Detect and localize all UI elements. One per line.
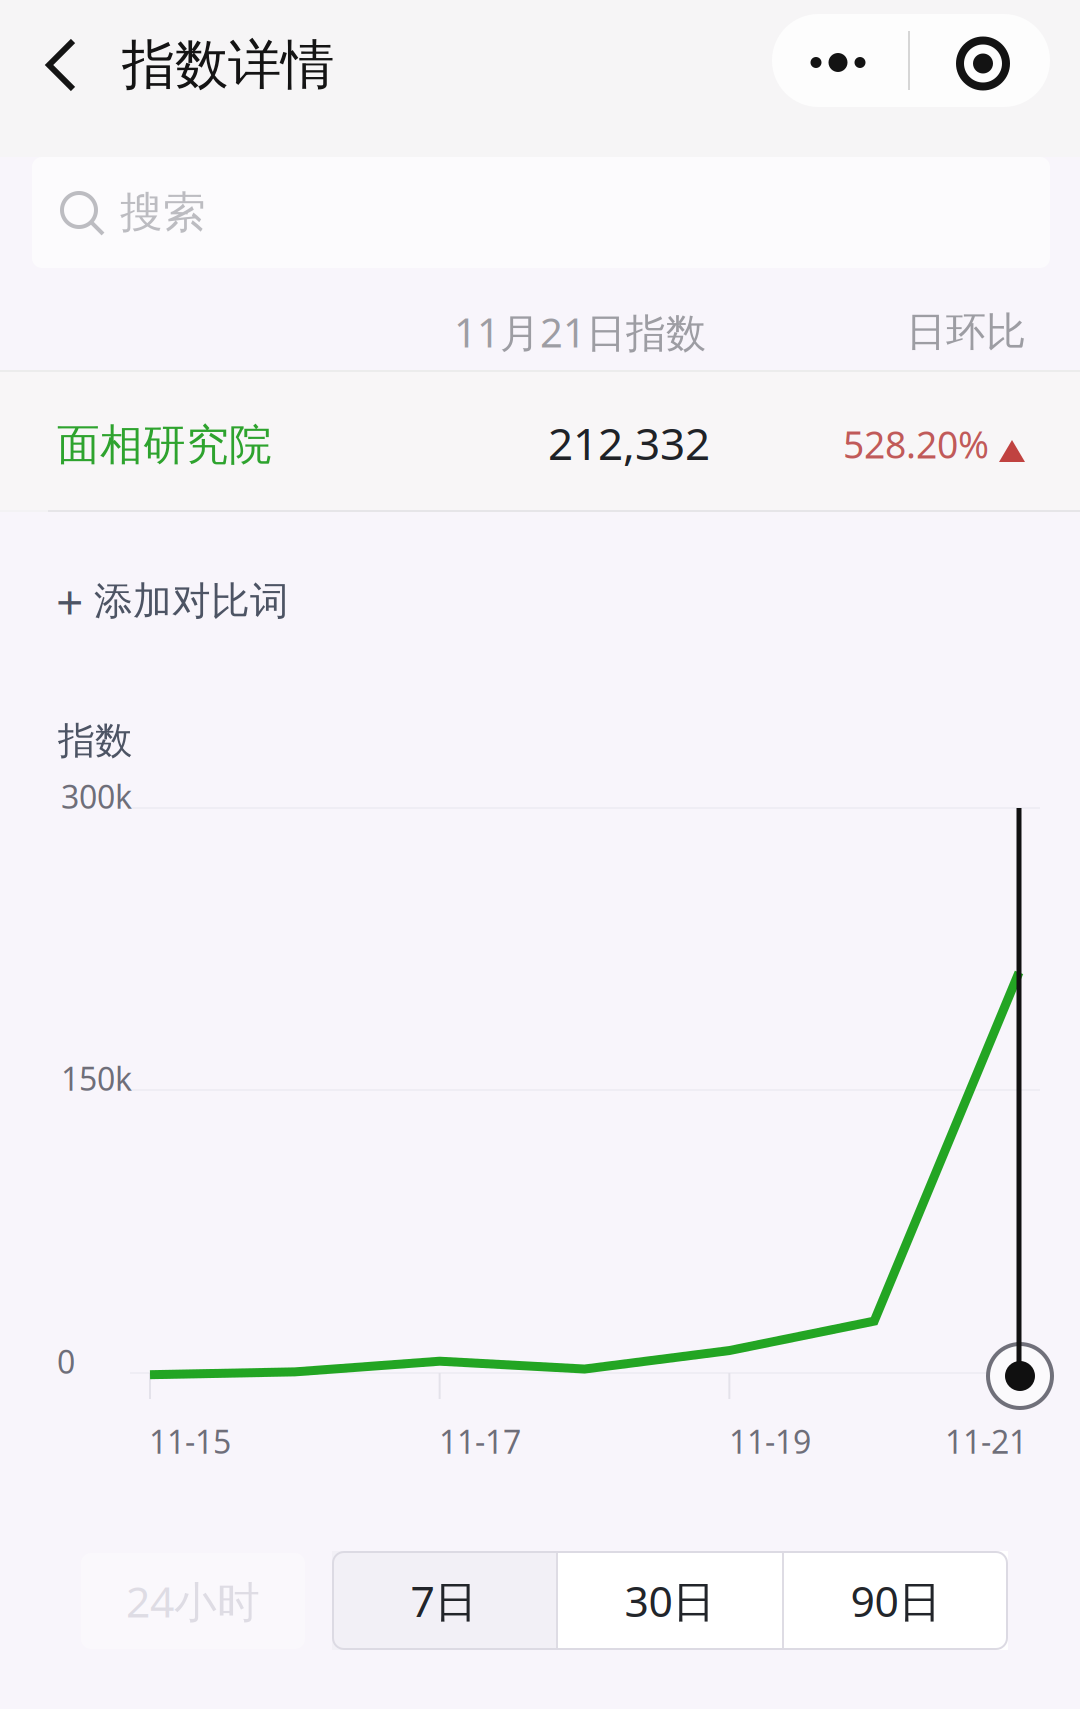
button[interactable]: + (0, 555, 330, 647)
staticText: 11-19 (729, 1420, 811, 1462)
staticText: 指数 (58, 718, 132, 764)
button[interactable]: Back (0, 0, 122, 130)
staticText: 11-15 (149, 1420, 231, 1462)
button[interactable]: 搜索 (32, 157, 1050, 268)
staticText: 面相研究院 (57, 419, 272, 471)
staticText: 指数详情 (122, 32, 334, 98)
button[interactable]: Close mini program (912, 17, 1054, 110)
staticText: 300k (61, 775, 132, 817)
button[interactable]: 7日 (332, 1551, 556, 1650)
button[interactable]: 90日 (784, 1551, 1008, 1650)
staticText: 24小时 (126, 1573, 260, 1629)
staticText: 添加对比词 (94, 577, 289, 625)
button[interactable]: More options (772, 14, 904, 109)
staticText: 528.20% (843, 419, 989, 469)
staticText: 30日 (624, 1572, 715, 1629)
staticText: 11-21 (945, 1420, 1027, 1462)
staticText: + (56, 569, 83, 633)
staticText: 7日 (410, 1572, 477, 1629)
staticText: 0 (57, 1340, 75, 1382)
staticText: 日环比 (906, 307, 1026, 356)
staticText: 150k (61, 1057, 132, 1099)
staticText: 11月21日指数 (454, 305, 706, 358)
staticText: 11-17 (439, 1420, 521, 1462)
staticText: 212,332 (548, 414, 710, 472)
button[interactable]: 30日 (558, 1551, 782, 1650)
button[interactable]: 24小时 (81, 1553, 305, 1649)
staticText: 90日 (850, 1572, 941, 1629)
staticText: 搜索 (120, 186, 206, 239)
button[interactable]: 面相研究院 (0, 370, 1080, 510)
